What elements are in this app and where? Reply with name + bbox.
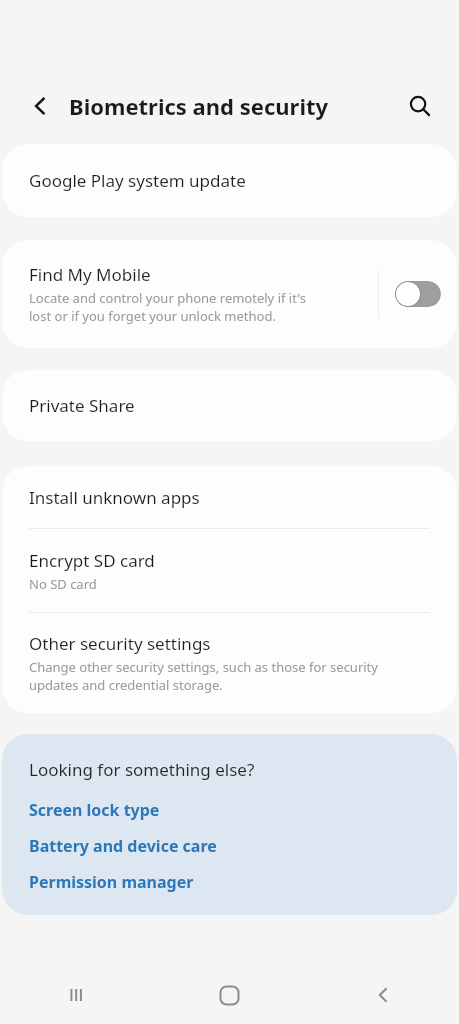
button[interactable]: Home: [153, 966, 306, 1024]
button[interactable]: Search: [399, 85, 441, 127]
staticText: Battery and device care: [29, 835, 217, 857]
button[interactable]: Encrypt SD card: [2, 529, 457, 612]
button[interactable]: Find My Mobile toggle: [395, 281, 441, 307]
staticText: Other security settings: [29, 632, 211, 655]
button[interactable]: Screen lock type: [29, 799, 160, 821]
staticText: Install unknown apps: [29, 486, 200, 509]
button[interactable]: Back: [20, 86, 60, 126]
staticText: Encrypt SD card: [29, 549, 155, 572]
staticText: Screen lock type: [29, 799, 160, 821]
staticText: Change other security settings, such as …: [29, 658, 378, 694]
staticText: Google Play system update: [29, 169, 246, 192]
button[interactable]: Battery and device care: [29, 835, 217, 857]
staticText: Locate and control your phone remotely i…: [29, 289, 306, 325]
button[interactable]: Google Play system update: [2, 144, 457, 217]
button[interactable]: Install unknown apps: [2, 466, 457, 528]
staticText: Find My Mobile: [29, 263, 151, 286]
button[interactable]: Private Share: [2, 370, 457, 441]
staticText: No SD card: [29, 575, 97, 593]
staticText: Permission manager: [29, 871, 194, 893]
button[interactable]: Other security settings: [2, 613, 457, 713]
button[interactable]: Back: [306, 966, 459, 1024]
staticText: Looking for something else?: [29, 758, 255, 781]
staticText: Private Share: [29, 394, 135, 417]
button[interactable]: Recents: [0, 966, 153, 1024]
staticText: Biometrics and security: [69, 91, 329, 121]
button[interactable]: Permission manager: [29, 871, 194, 893]
button[interactable]: Find My Mobile: [2, 240, 457, 348]
